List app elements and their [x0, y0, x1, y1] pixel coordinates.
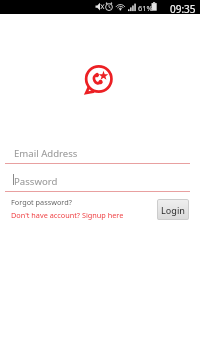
- staticText: Email Address: [14, 147, 78, 160]
- button[interactable]: Email Address: [0, 146, 200, 164]
- button[interactable]: Forgot password?: [11, 197, 72, 207]
- staticText: Don't have account? Signup here: [11, 210, 124, 220]
- button[interactable]: Login: [157, 199, 189, 220]
- staticText: Password: [14, 175, 58, 188]
- staticText: 61%: [138, 3, 153, 13]
- button[interactable]: Password: [0, 174, 200, 192]
- staticText: 09:35: [170, 2, 196, 16]
- button[interactable]: Don't have account? Signup here: [11, 210, 124, 220]
- staticText: Login: [161, 204, 185, 216]
- staticText: Forgot password?: [11, 197, 72, 207]
